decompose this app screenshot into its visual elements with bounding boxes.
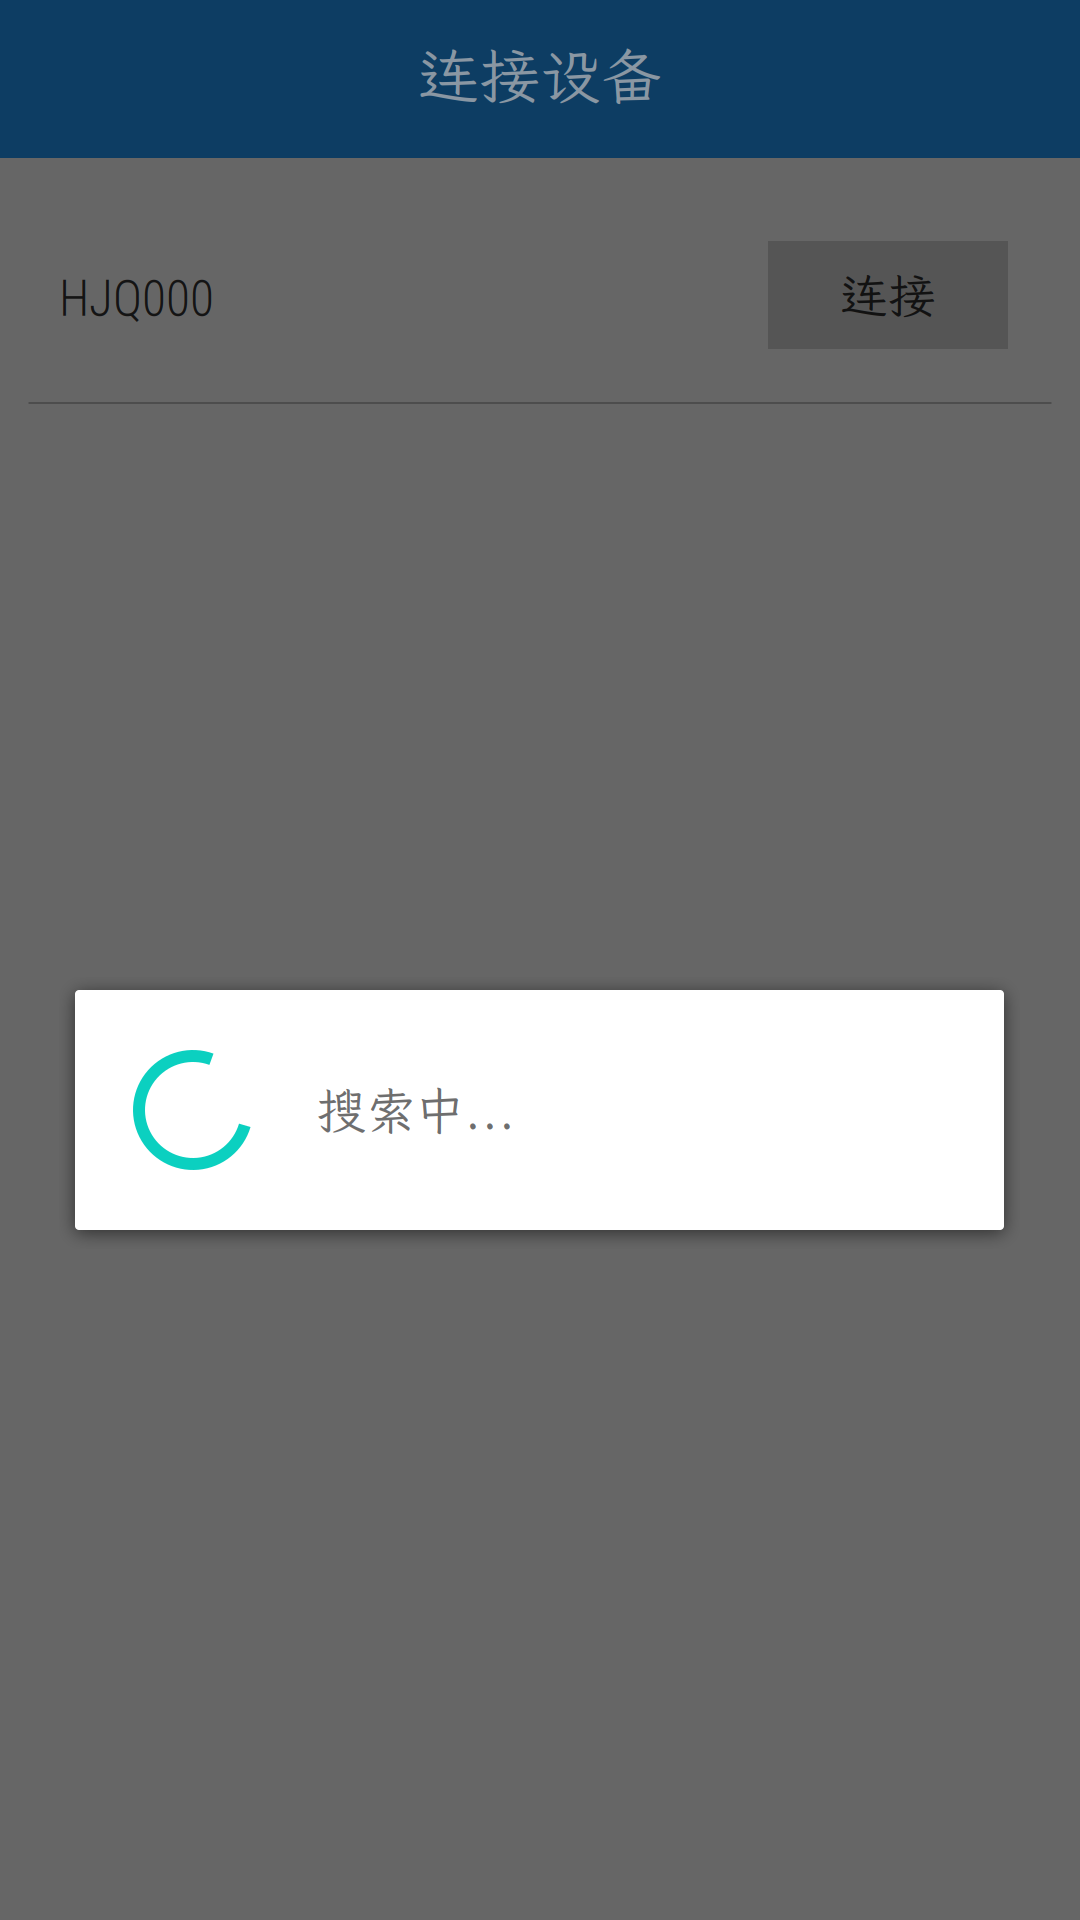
staticText: HJQ000 [59, 270, 214, 328]
staticText: 连接设备 [418, 35, 662, 115]
staticText: 连接 [840, 263, 936, 327]
button[interactable]: 连接 [768, 241, 1008, 349]
staticText: 搜索中... [317, 1077, 515, 1142]
